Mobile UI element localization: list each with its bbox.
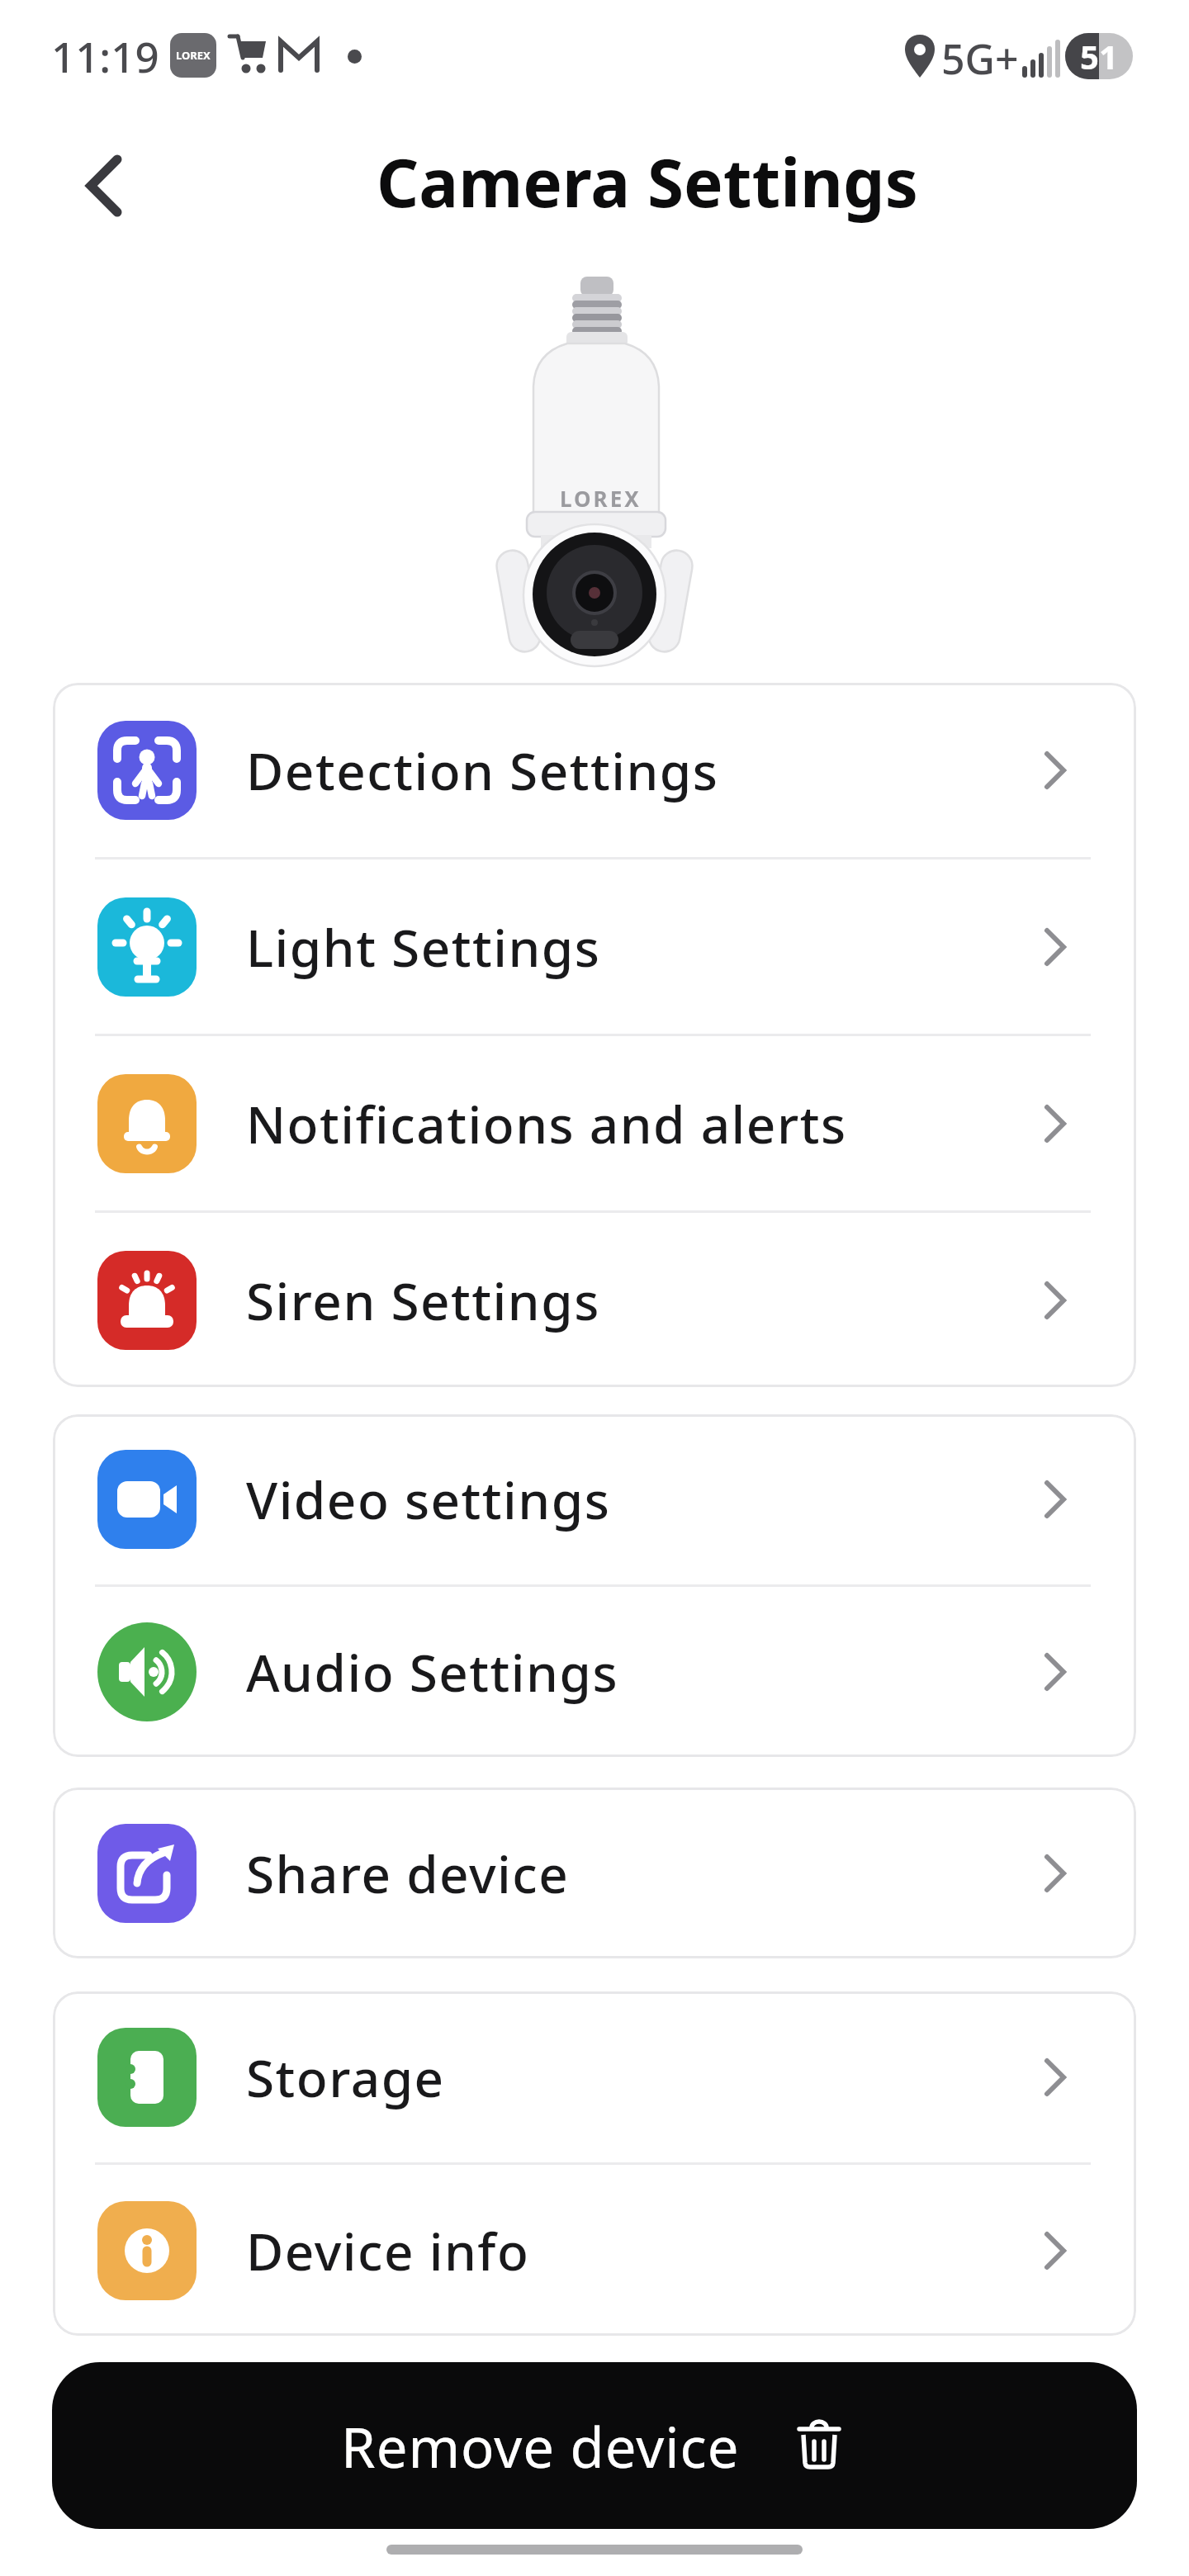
staticText: LOREX xyxy=(560,484,642,513)
button[interactable]: Device info xyxy=(53,2165,1136,2336)
staticText: Share device xyxy=(246,1839,570,1908)
staticText: 5G+ xyxy=(941,31,1019,87)
button[interactable]: Notifications and alerts xyxy=(53,1036,1136,1210)
staticText: 51 xyxy=(1080,34,1118,78)
button[interactable] xyxy=(66,149,140,223)
staticText: LOREX xyxy=(176,48,211,63)
button[interactable]: Light Settings xyxy=(53,859,1136,1034)
staticText: Video settings xyxy=(246,1465,611,1534)
staticText: 11:19 xyxy=(51,27,159,84)
button[interactable]: Remove device xyxy=(52,2362,1137,2529)
button[interactable]: Share device xyxy=(53,1788,1136,1958)
staticText: Detection Settings xyxy=(246,736,719,805)
staticText: Light Settings xyxy=(246,912,601,982)
staticText: Camera Settings xyxy=(377,136,918,226)
staticText: Siren Settings xyxy=(246,1266,600,1335)
staticText: Audio Settings xyxy=(246,1637,619,1707)
button[interactable]: Audio Settings xyxy=(53,1587,1136,1757)
button[interactable]: Detection Settings xyxy=(53,683,1136,857)
staticText: Device info xyxy=(246,2216,530,2285)
button[interactable]: Video settings xyxy=(53,1414,1136,1584)
button[interactable]: Siren Settings xyxy=(53,1213,1136,1387)
button[interactable]: Storage xyxy=(53,1991,1136,2162)
staticText: Notifications and alerts xyxy=(246,1089,847,1158)
staticText: Storage xyxy=(246,2043,445,2112)
staticText: Remove device xyxy=(341,2408,740,2484)
